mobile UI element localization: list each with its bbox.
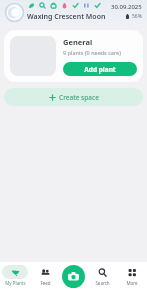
staticText: My Plants: [5, 280, 26, 286]
staticText: General: [63, 37, 93, 47]
staticText: 56%: [132, 13, 142, 20]
staticText: 9 plants (0 needs care): [63, 49, 121, 56]
button[interactable]: Identify plant with camera: [62, 265, 85, 288]
staticText: Create space: [59, 93, 99, 102]
staticText: 30.09.2025: [111, 3, 142, 11]
staticText: More: [126, 280, 138, 286]
staticText: Add plant: [84, 65, 116, 74]
other: Moon phase: [4, 2, 25, 23]
button[interactable]: More: [117, 265, 147, 286]
staticText: Search: [95, 280, 110, 286]
button[interactable]: Search: [87, 265, 117, 286]
staticText: Feed: [40, 280, 51, 286]
button[interactable]: Create space: [4, 88, 143, 106]
button[interactable]: General: [4, 30, 143, 82]
button[interactable]: Add plant: [63, 62, 137, 76]
button[interactable]: My Plants: [0, 265, 30, 286]
button[interactable]: Feed: [30, 265, 60, 286]
staticText: Waxing Crescent Moon: [27, 12, 106, 22]
